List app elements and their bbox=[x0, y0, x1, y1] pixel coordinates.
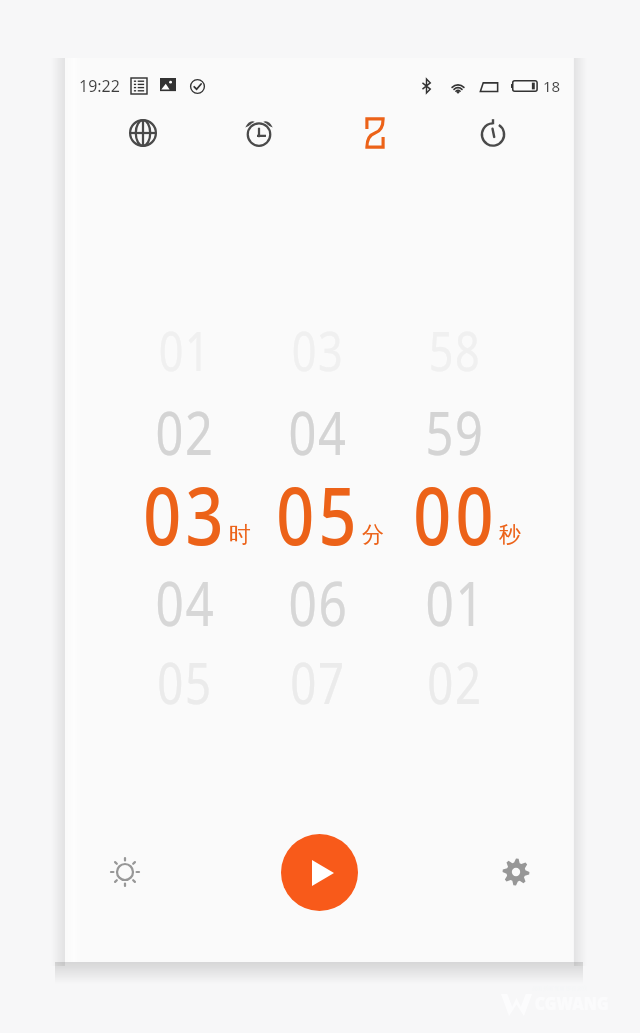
staticText: 03 bbox=[143, 461, 228, 561]
staticText: 59 bbox=[425, 390, 485, 473]
staticText: 01 bbox=[159, 313, 211, 387]
staticText: 00 bbox=[413, 461, 498, 561]
staticText: 02 bbox=[427, 643, 483, 721]
staticText: 01 bbox=[425, 560, 485, 644]
staticText: 06 bbox=[288, 560, 348, 644]
button[interactable]: 03 bbox=[125, 461, 245, 561]
button[interactable]: Brightness bbox=[109, 856, 141, 888]
staticText: 04 bbox=[155, 560, 215, 644]
staticText: 58 bbox=[429, 313, 481, 387]
staticText: 时 bbox=[229, 521, 251, 549]
button[interactable]: Stopwatch bbox=[464, 104, 522, 162]
button[interactable]: 07 bbox=[258, 632, 378, 732]
staticText: 18 bbox=[543, 76, 561, 96]
staticText: 02 bbox=[155, 390, 215, 473]
button[interactable]: Alarm bbox=[230, 104, 288, 162]
staticText: 05 bbox=[276, 461, 361, 561]
staticText: 07 bbox=[290, 643, 346, 721]
button[interactable]: 01 bbox=[395, 552, 515, 652]
staticText: 03 bbox=[292, 313, 344, 387]
button[interactable]: 06 bbox=[258, 552, 378, 652]
staticText: 05 bbox=[157, 643, 213, 721]
button[interactable]: 59 bbox=[395, 381, 515, 481]
button[interactable]: 02 bbox=[395, 632, 515, 732]
button[interactable]: 05 bbox=[258, 461, 378, 561]
button[interactable]: Start bbox=[281, 834, 358, 911]
button[interactable]: 04 bbox=[258, 381, 378, 481]
button[interactable]: Timer bbox=[346, 104, 404, 162]
staticText: 04 bbox=[288, 390, 348, 473]
button[interactable]: Settings bbox=[500, 856, 532, 888]
button[interactable]: 04 bbox=[125, 552, 245, 652]
button[interactable]: 02 bbox=[125, 381, 245, 481]
staticText: 分 bbox=[362, 521, 384, 549]
staticText: 秒 bbox=[499, 521, 521, 549]
button[interactable]: World clock bbox=[114, 104, 172, 162]
button[interactable]: 05 bbox=[125, 632, 245, 732]
staticText: 19:22 bbox=[79, 75, 120, 97]
button[interactable]: 00 bbox=[395, 461, 515, 561]
